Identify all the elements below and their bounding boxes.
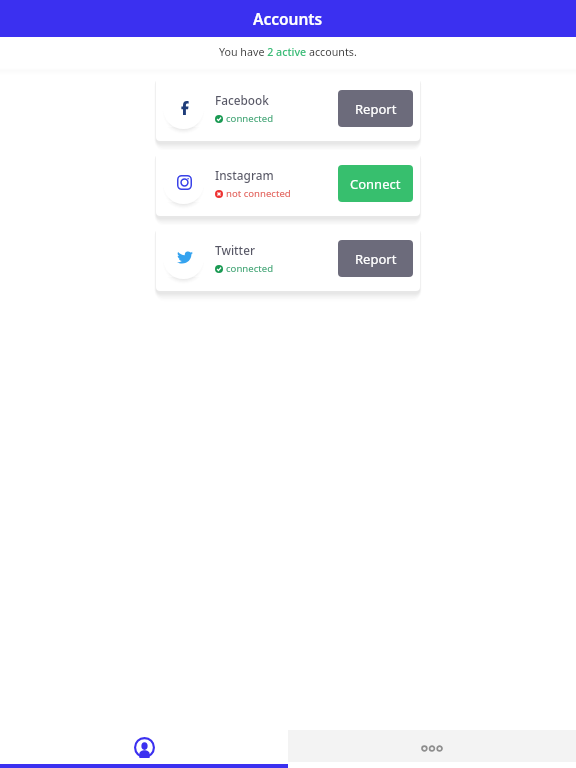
staticText: You have 2 active accounts. <box>219 45 357 60</box>
button[interactable]: Report <box>338 90 413 127</box>
button[interactable]: Report <box>338 240 413 277</box>
staticText: connected <box>226 112 274 125</box>
staticText: Twitter <box>215 242 255 258</box>
button[interactable]: Account <box>0 730 288 764</box>
staticText: Report <box>355 100 397 118</box>
button[interactable]: Twitter <box>156 225 420 291</box>
button[interactable]: Instagram <box>156 150 420 216</box>
staticText: connected <box>226 262 274 275</box>
button[interactable]: Facebook <box>156 75 420 141</box>
staticText: Connect <box>350 175 401 193</box>
staticText: not connected <box>226 187 291 200</box>
staticText: Report <box>355 250 397 268</box>
staticText: Instagram <box>215 167 274 183</box>
staticText: Accounts <box>253 8 323 29</box>
button[interactable]: Connect <box>338 165 413 202</box>
button[interactable]: More options <box>288 730 576 762</box>
staticText: Facebook <box>215 92 269 108</box>
